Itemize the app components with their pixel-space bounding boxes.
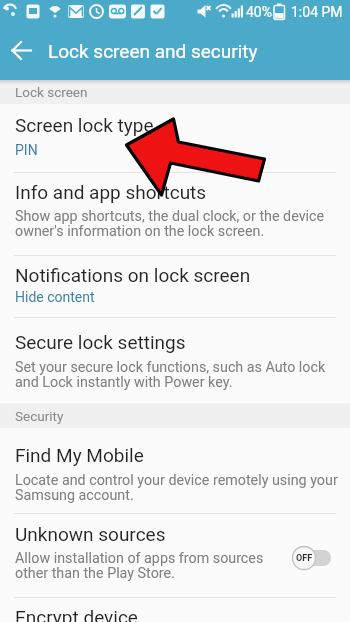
- staticText: Security: [15, 408, 64, 424]
- staticText: Set your secure lock functions, such as …: [15, 359, 326, 391]
- staticText: Secure lock settings: [15, 331, 186, 353]
- staticText: Info and app shortcuts: [15, 181, 207, 203]
- staticText: Allow installation of apps from sources …: [15, 550, 264, 582]
- staticText: Show app shortcuts, the dual clock, or t…: [15, 208, 325, 240]
- button[interactable]: Info and app shortcuts: [0, 173, 350, 255]
- button[interactable]: Notifications on lock screen: [0, 256, 350, 317]
- button[interactable]: Screen lock type: [0, 104, 350, 172]
- button[interactable]: [0, 24, 44, 78]
- staticText: Find My Mobile: [15, 444, 144, 466]
- button[interactable]: OFF: [292, 546, 334, 572]
- button[interactable]: Secure lock settings: [0, 318, 350, 403]
- button[interactable]: Find My Mobile: [0, 428, 350, 513]
- staticText: Screen lock type: [15, 114, 154, 136]
- staticText: 1:04 PM: [291, 4, 343, 20]
- staticText: PIN: [15, 142, 38, 158]
- staticText: Hide content: [15, 289, 95, 305]
- staticText: Locate and control your device remotely …: [15, 472, 338, 504]
- button[interactable]: Encrypt device: [0, 598, 350, 622]
- staticText: Notifications on lock screen: [15, 264, 251, 286]
- staticText: Unknown sources: [15, 523, 166, 545]
- button[interactable]: Unknown sources: [0, 514, 350, 597]
- staticText: OFF: [296, 553, 313, 564]
- staticText: Encrypt device: [15, 606, 138, 622]
- staticText: 40%: [246, 4, 272, 20]
- staticText: Lock screen and security: [48, 40, 258, 62]
- staticText: Lock screen: [15, 84, 88, 100]
